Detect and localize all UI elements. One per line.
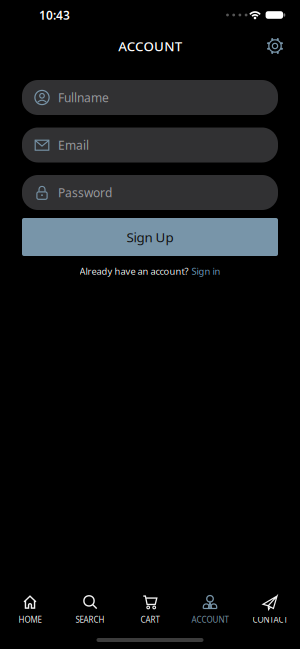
button[interactable]: CONTACT bbox=[240, 595, 300, 625]
staticText: 10:43 bbox=[39, 7, 70, 23]
staticText: Password bbox=[58, 184, 112, 200]
staticText: Sign Up bbox=[126, 228, 173, 246]
staticText: Email bbox=[58, 137, 89, 153]
button[interactable]: Password bbox=[22, 175, 278, 210]
button[interactable]: Sign in bbox=[191, 265, 220, 277]
staticText: CONTACT bbox=[252, 614, 287, 625]
button[interactable]: CART bbox=[120, 595, 180, 625]
button[interactable]: HOME bbox=[0, 595, 60, 625]
staticText: HOME bbox=[18, 614, 41, 625]
staticText: CART bbox=[140, 614, 159, 625]
button[interactable] bbox=[266, 37, 284, 55]
staticText: ACCOUNT bbox=[118, 37, 182, 55]
staticText: ACCOUNT bbox=[191, 614, 228, 625]
staticText: SEARCH bbox=[75, 614, 104, 625]
button[interactable]: SEARCH bbox=[60, 595, 120, 625]
button[interactable]: Fullname bbox=[22, 80, 278, 115]
staticText: Sign in bbox=[191, 265, 220, 277]
button[interactable]: Sign Up bbox=[22, 218, 278, 256]
staticText: Fullname bbox=[58, 89, 109, 105]
button[interactable]: ACCOUNT bbox=[180, 595, 240, 625]
button[interactable]: Email bbox=[22, 127, 278, 162]
staticText: Already have an account? bbox=[79, 265, 188, 277]
